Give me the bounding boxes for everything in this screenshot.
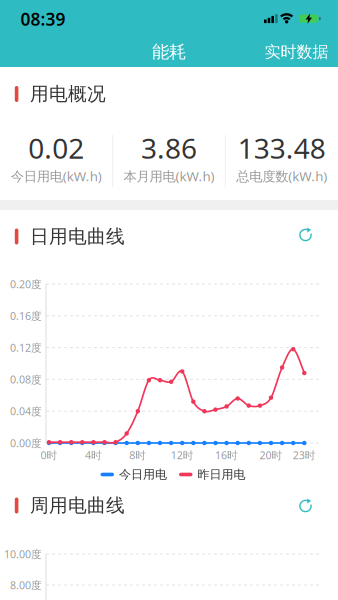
staticText: 12时	[171, 448, 194, 462]
staticText: 总电度数(kW.h)	[236, 167, 327, 185]
staticText: 0.00度	[10, 436, 42, 450]
button[interactable]: 刷新	[291, 492, 319, 520]
staticText: 0.16度	[10, 309, 42, 323]
staticText: 周用电曲线	[30, 494, 125, 517]
staticText: 4时	[85, 448, 102, 462]
staticText: 16时	[215, 448, 238, 462]
staticText: 今日用电(kW.h)	[11, 167, 102, 185]
staticText: 0.02	[28, 129, 84, 167]
staticText: 3.86	[141, 129, 197, 167]
button[interactable]: 刷新	[291, 221, 319, 249]
staticText: 0.08度	[10, 372, 42, 386]
staticText: 20时	[259, 448, 282, 462]
staticText: 8时	[129, 448, 146, 462]
staticText: 昨日用电	[197, 467, 245, 482]
staticText: 用电概况	[30, 82, 106, 105]
staticText: 本月用电(kW.h)	[123, 167, 214, 185]
button[interactable]: 实时数据	[260, 34, 332, 70]
staticText: 133.48	[238, 129, 326, 167]
staticText: 0.04度	[10, 404, 42, 418]
staticText: 23时	[293, 448, 316, 462]
staticText: 实时数据	[264, 42, 328, 62]
staticText: 今日用电	[119, 467, 167, 482]
staticText: 0.20度	[10, 277, 42, 291]
staticText: 日用电曲线	[30, 225, 125, 248]
staticText: 10.00度	[4, 547, 42, 561]
staticText: 08:39	[20, 7, 65, 30]
staticText: 0.12度	[10, 340, 42, 355]
staticText: 能耗	[152, 41, 186, 63]
staticText: 0时	[40, 448, 57, 462]
staticText: 8.00度	[10, 578, 42, 592]
